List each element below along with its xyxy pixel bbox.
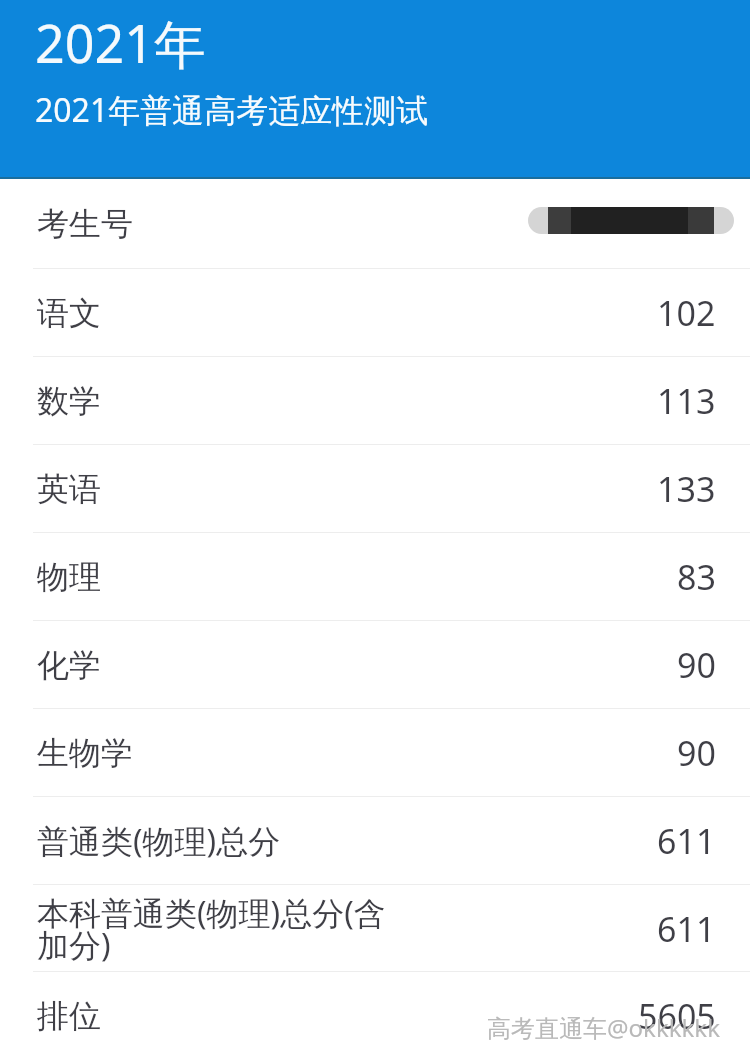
staticText: 5605	[638, 993, 716, 1039]
staticText: 611	[657, 906, 716, 952]
button[interactable]: 生物学	[0, 709, 750, 797]
staticText: 物理	[37, 557, 457, 597]
button[interactable]: 化学	[0, 621, 750, 709]
button[interactable]: 考生号	[0, 179, 750, 269]
staticText: 考生号	[37, 204, 457, 244]
staticText: 排位	[37, 996, 457, 1036]
staticText: 本科普通类(物理)总分(含加分)	[37, 891, 397, 967]
button[interactable]: 本科普通类(物理)总分(含加分)	[0, 885, 750, 972]
staticText: 2021年普通高考适应性测试	[35, 88, 429, 132]
button[interactable]: 英语	[0, 445, 750, 533]
button[interactable]: 物理	[0, 533, 750, 621]
staticText: 611	[657, 818, 716, 864]
button[interactable]: 数学	[0, 357, 750, 445]
staticText: 113	[657, 378, 716, 424]
staticText: 普通类(物理)总分	[37, 819, 457, 863]
staticText: 英语	[37, 469, 457, 509]
staticText: 83	[677, 554, 716, 600]
staticText: 语文	[37, 293, 457, 333]
staticText: 133	[657, 466, 716, 512]
staticText: 生物学	[37, 733, 457, 773]
staticText: 化学	[37, 645, 457, 685]
other: Candidate number hidden	[528, 207, 734, 234]
staticText: 90	[677, 642, 716, 688]
staticText: 102	[657, 290, 716, 336]
staticText: 高考直通车@okkkkkk	[487, 1011, 720, 1044]
staticText: 数学	[37, 381, 457, 421]
button[interactable]: 普通类(物理)总分	[0, 797, 750, 885]
staticText: 2021年	[35, 7, 206, 78]
button[interactable]: 排位	[0, 972, 750, 1057]
staticText: 90	[677, 730, 716, 776]
button[interactable]: 语文	[0, 269, 750, 357]
